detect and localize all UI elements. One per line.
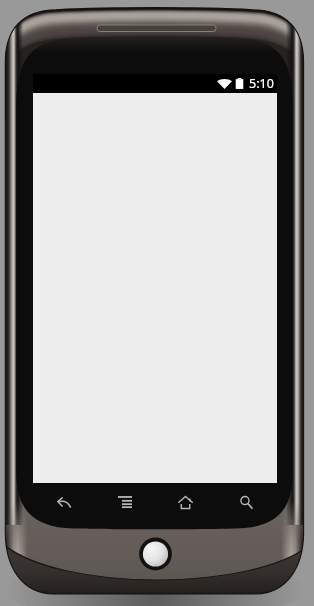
- button[interactable]: Search: [216, 488, 277, 516]
- button[interactable]: Back: [33, 488, 94, 516]
- staticText: 5:10: [249, 75, 274, 92]
- button[interactable]: Home: [155, 488, 216, 516]
- button[interactable]: Menu: [94, 488, 155, 516]
